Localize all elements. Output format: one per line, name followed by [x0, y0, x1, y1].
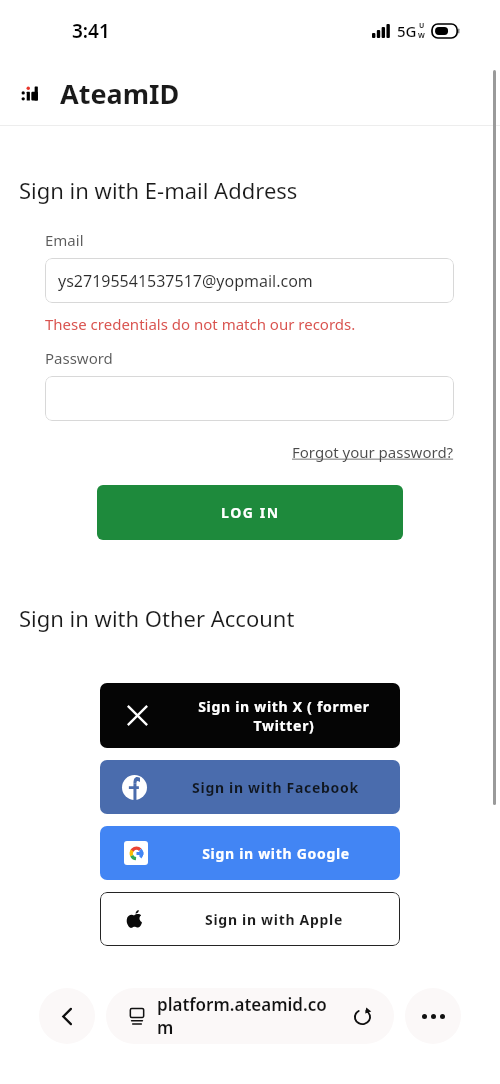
staticText: Email [45, 230, 84, 250]
staticText: 3:41 [72, 18, 110, 44]
staticText: Sign in with Other Account [19, 603, 295, 633]
button[interactable]: LOG IN [97, 485, 403, 540]
button[interactable]: Sign in with Google [100, 826, 400, 880]
button[interactable] [45, 376, 454, 421]
staticText: U [419, 21, 425, 31]
other: Sign in with Google [124, 841, 148, 865]
staticText: These credentials do not match our recor… [45, 314, 356, 334]
staticText: Sign in with Apple [205, 910, 343, 929]
staticText: AteamID [60, 75, 180, 112]
button[interactable]: Sign in with Apple [100, 892, 400, 946]
button[interactable]: Forgot your password? [292, 440, 454, 464]
button[interactable]: Page settings [106, 988, 394, 1044]
button[interactable]: Back [39, 988, 95, 1044]
other: Sign in with X [126, 704, 149, 727]
other: Reload [353, 1007, 372, 1026]
other: Sign in with Apple [125, 910, 143, 928]
other: Page settings [128, 1007, 146, 1025]
staticText: 5G [397, 21, 417, 41]
staticText: LOG IN [221, 503, 280, 522]
button[interactable]: Sign in with X [100, 683, 400, 748]
staticText: Sign in with X ( former Twitter) [198, 697, 370, 735]
staticText: Sign in with Facebook [192, 778, 359, 797]
staticText: ys27195541537517@yopmail.com [58, 270, 313, 292]
button[interactable]: Sign in with Facebook [100, 760, 400, 814]
staticText: W [418, 31, 425, 41]
staticText: Password [45, 348, 113, 368]
staticText: Sign in with E-mail Address [19, 175, 298, 205]
staticText: platform.ateamid.com [157, 993, 342, 1039]
button[interactable]: ys27195541537517@yopmail.com [45, 258, 454, 303]
staticText: Sign in with Google [202, 844, 350, 863]
other: Sign in with Facebook [122, 775, 147, 800]
button[interactable]: More options [405, 988, 461, 1044]
